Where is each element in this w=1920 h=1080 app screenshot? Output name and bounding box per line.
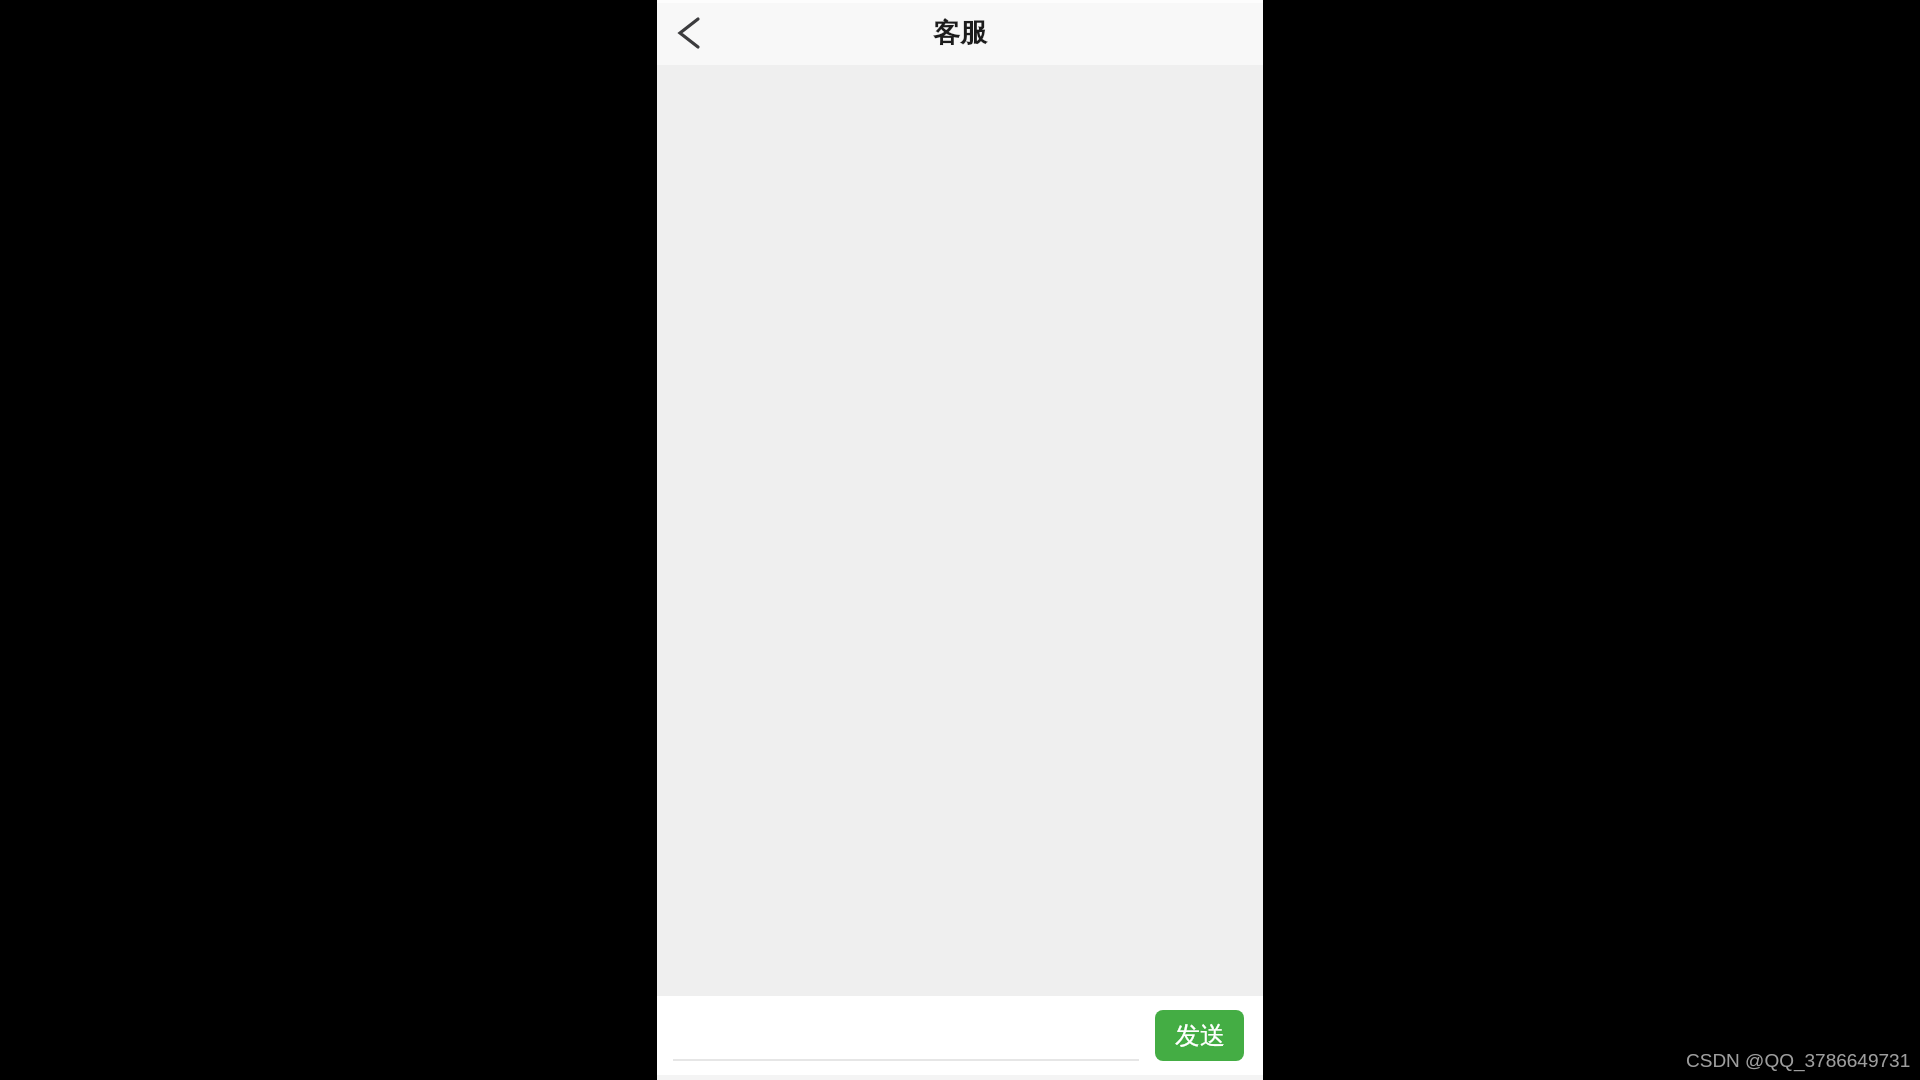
staticText: CSDN @QQ_3786649731	[1686, 1050, 1911, 1071]
button[interactable]: 发送	[1155, 1010, 1244, 1061]
staticText: 客服	[933, 16, 987, 50]
staticText: 发送	[1175, 1020, 1225, 1051]
button[interactable]	[673, 1015, 1139, 1061]
button[interactable]	[667, 11, 711, 55]
